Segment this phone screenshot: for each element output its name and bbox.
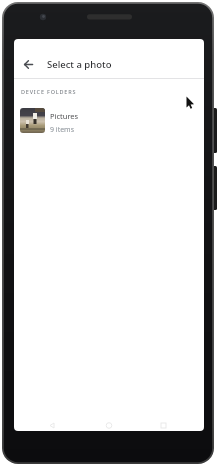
button[interactable] <box>14 50 42 78</box>
staticText: Select a photo <box>47 58 112 71</box>
staticText: Pictures <box>50 111 79 121</box>
staticText: DEVICE FOLDERS <box>21 88 77 95</box>
button[interactable]: Pictures <box>14 104 204 137</box>
staticText: 9 items <box>50 125 75 135</box>
